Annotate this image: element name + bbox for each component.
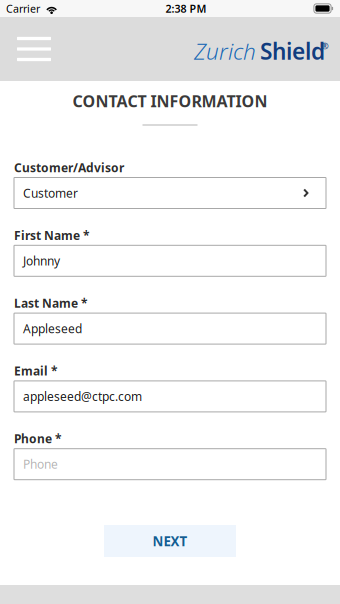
staticText: First Name *: [14, 227, 90, 243]
staticText: Last Name *: [14, 295, 88, 311]
staticText: Customer: [23, 185, 78, 201]
staticText: ®: [321, 40, 329, 52]
staticText: Shield: [260, 36, 325, 66]
staticText: Phone: [23, 456, 58, 472]
staticText: Email *: [14, 363, 58, 379]
staticText: 2:38 PM: [166, 1, 207, 16]
button[interactable]: Customer: [14, 177, 326, 208]
staticText: appleseed@ctpc.com: [23, 388, 142, 404]
staticText: Zurich: [194, 36, 256, 66]
staticText: NEXT: [152, 532, 187, 550]
staticText: Carrier: [6, 1, 40, 16]
staticText: CONTACT INFORMATION: [72, 90, 267, 112]
staticText: Customer/Advisor: [14, 159, 124, 175]
button[interactable]: NEXT: [104, 525, 236, 557]
staticText: Johnny: [23, 253, 60, 269]
staticText: Appleseed: [23, 321, 82, 336]
button[interactable]: Menu: [0, 17, 68, 81]
staticText: Phone *: [14, 431, 62, 447]
